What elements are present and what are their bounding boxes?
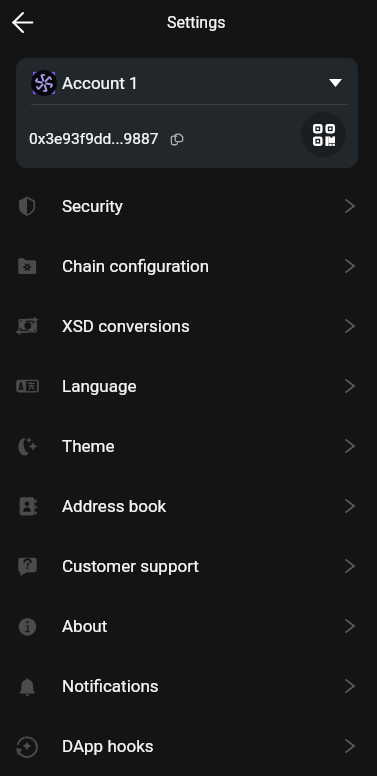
staticText: Language [62,376,137,396]
staticText: Settings [167,13,226,32]
button[interactable]: Back [2,2,42,42]
button[interactable]: Security [0,176,377,236]
button[interactable]: 0x3e93f9dd...9887 [29,130,183,148]
staticText: Chain configuration [62,256,210,276]
staticText: About [62,616,108,636]
button[interactable]: Account 1 [16,58,358,104]
button[interactable]: About [0,596,377,656]
staticText: Address book [62,496,167,516]
staticText: DApp hooks [62,736,154,756]
button[interactable]: Language [0,356,377,416]
staticText: Customer support [62,556,199,576]
button[interactable]: Customer support [0,536,377,596]
button[interactable]: Chain configuration [0,236,377,296]
staticText: XSD conversions [62,316,190,336]
staticText: Security [62,196,123,216]
button[interactable]: XSD conversions [0,296,377,356]
staticText: Notifications [62,676,159,696]
button[interactable]: Notifications [0,656,377,716]
button[interactable]: Theme [0,416,377,476]
staticText: 0x3e93f9dd...9887 [29,130,159,148]
button[interactable]: Address book [0,476,377,536]
staticText: Theme [62,436,115,456]
staticText: Account 1 [62,73,139,93]
button[interactable]: DApp hooks [0,716,377,776]
button[interactable]: Show QR code [301,112,346,157]
